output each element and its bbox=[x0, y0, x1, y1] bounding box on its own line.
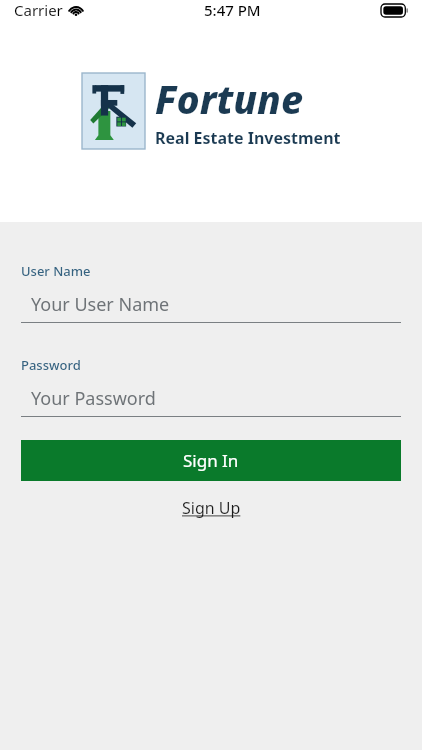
staticText: Your Password bbox=[31, 386, 156, 411]
staticText: Your User Name bbox=[31, 292, 170, 317]
staticText: Real Estate Investment bbox=[155, 127, 341, 149]
button[interactable]: Sign In bbox=[21, 440, 401, 481]
button[interactable]: Password input bbox=[21, 383, 401, 417]
staticText: 5:47 PM bbox=[204, 0, 261, 20]
staticText: Carrier bbox=[14, 0, 63, 20]
button[interactable]: User Name input bbox=[21, 289, 401, 323]
staticText: Fortune bbox=[155, 72, 304, 125]
staticText: Password bbox=[21, 356, 81, 374]
staticText: User Name bbox=[21, 262, 91, 280]
staticText: Sign Up bbox=[182, 497, 241, 519]
button[interactable]: Sign Up bbox=[172, 493, 251, 523]
staticText: Sign In bbox=[183, 449, 239, 472]
